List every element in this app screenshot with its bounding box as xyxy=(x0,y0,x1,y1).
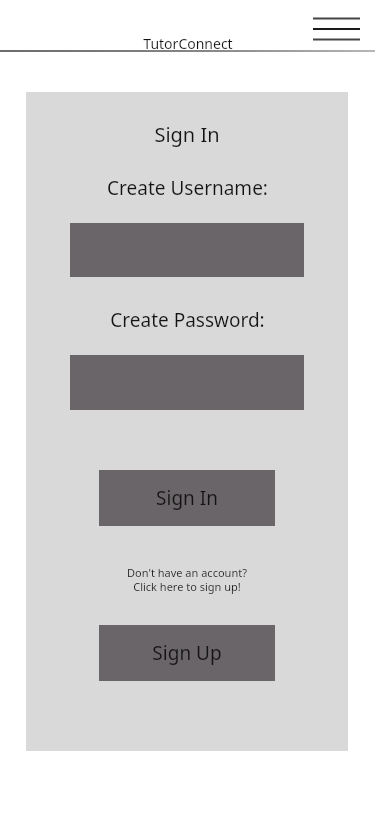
staticText: Create Username: xyxy=(107,175,268,201)
staticText: Sign In xyxy=(156,485,218,511)
button[interactable]: Don't have an account? Click here to sig… xyxy=(26,565,348,594)
staticText: TutorConnect xyxy=(143,34,233,53)
staticText: Sign Up xyxy=(152,640,222,666)
button[interactable]: Sign In xyxy=(99,470,275,526)
staticText: Create Password: xyxy=(110,307,265,333)
button[interactable]: Menu xyxy=(307,10,367,46)
staticText: Sign In xyxy=(154,121,220,148)
button[interactable]: Sign Up xyxy=(99,625,275,681)
